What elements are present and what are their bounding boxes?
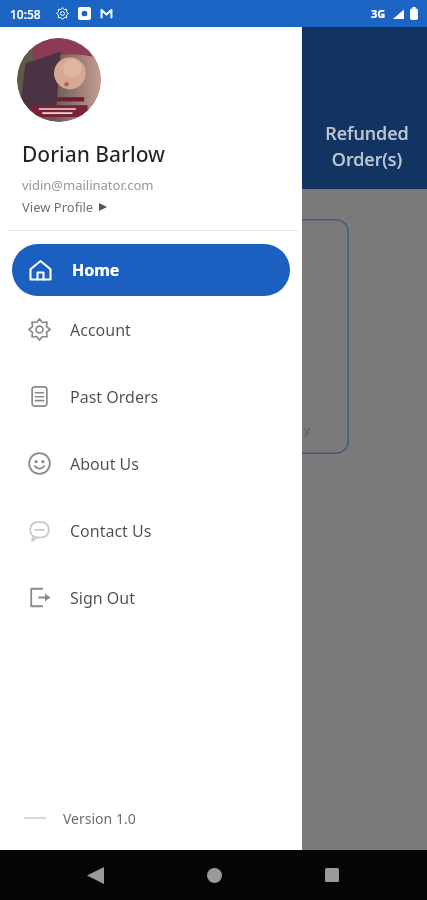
- staticText: y: [304, 422, 310, 437]
- button[interactable]: Version 1.0: [0, 796, 302, 840]
- staticText: Version 1.0: [63, 809, 136, 828]
- staticText: 10:58: [10, 6, 41, 22]
- staticText: Sign Out: [70, 587, 135, 609]
- staticText: Contact Us: [70, 520, 152, 542]
- button[interactable]: Home: [12, 244, 290, 296]
- staticText: About Us: [70, 453, 139, 475]
- button[interactable]: Contact Us: [0, 497, 302, 564]
- button[interactable]: View Profile: [22, 198, 107, 216]
- staticText: Account: [70, 319, 131, 341]
- staticText: Refunded Order(s): [325, 121, 409, 171]
- staticText: View Profile: [22, 198, 94, 216]
- staticText: Dorian Barlow: [22, 140, 166, 169]
- button[interactable]: Home: [190, 851, 238, 899]
- button[interactable]: About Us: [0, 430, 302, 497]
- staticText: Home: [72, 259, 120, 281]
- button[interactable]: Back: [71, 851, 119, 899]
- staticText: Past Orders: [70, 386, 159, 408]
- button[interactable]: Account: [0, 296, 302, 363]
- button[interactable]: Past Orders: [0, 363, 302, 430]
- staticText: vidin@mailinator.com: [22, 176, 154, 194]
- button[interactable]: Recent apps: [308, 851, 356, 899]
- button[interactable]: y: [14, 219, 349, 454]
- staticText: 3G: [371, 6, 386, 21]
- button[interactable]: Sign Out: [0, 564, 302, 631]
- button[interactable]: [17, 38, 101, 122]
